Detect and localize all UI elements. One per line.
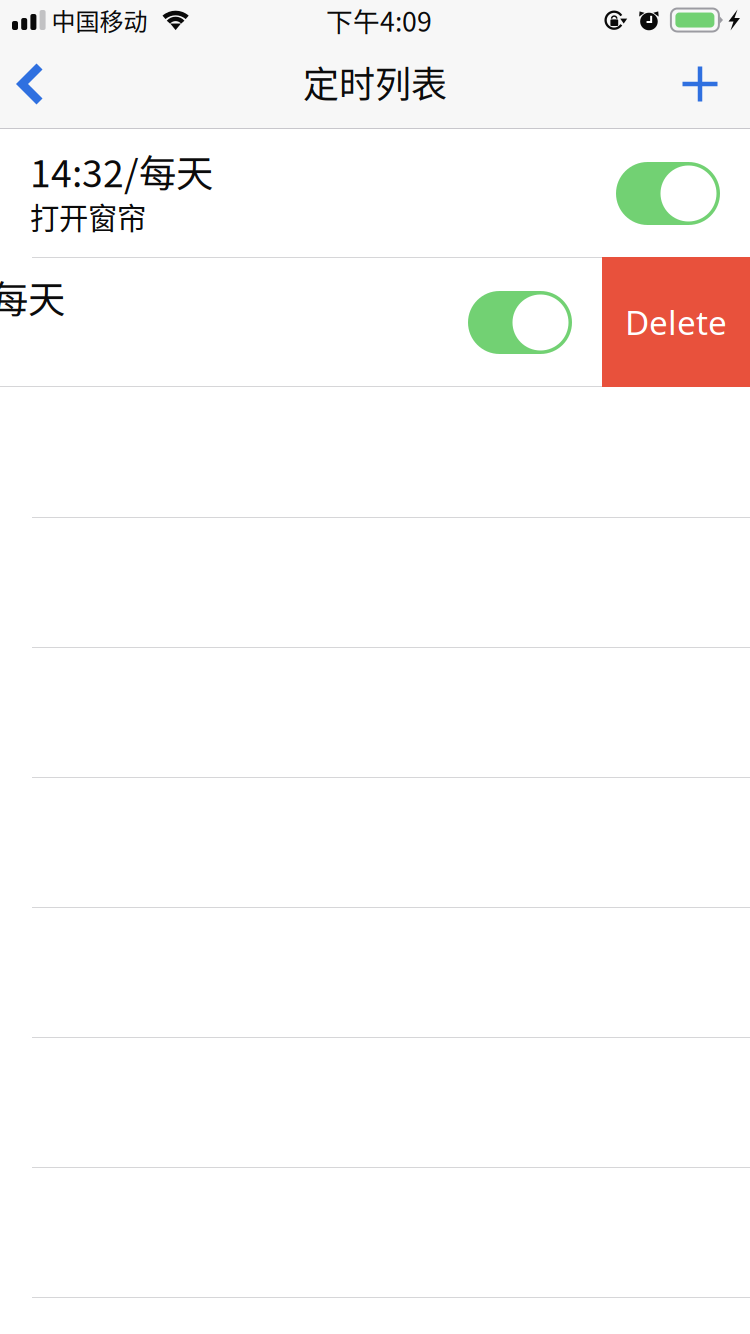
staticText: 打开窗帘: [30, 195, 146, 238]
staticText: 14:32/每天: [0, 270, 65, 324]
button[interactable]: 14:32/每天: [0, 129, 750, 257]
staticText: Delete: [625, 300, 727, 344]
button[interactable]: Add: [666, 40, 734, 128]
staticText: 定时列表: [303, 56, 447, 108]
button[interactable]: Delete: [602, 257, 750, 387]
staticText: 14:32/每天: [30, 144, 213, 198]
staticText: 中国移动: [52, 3, 148, 37]
button[interactable]: Back: [4, 40, 58, 128]
staticText: 下午4:09: [326, 1, 432, 39]
button[interactable]: 14:32/每天: [0, 258, 602, 387]
